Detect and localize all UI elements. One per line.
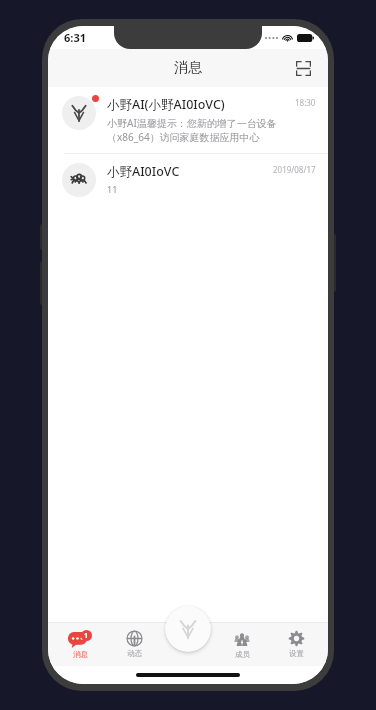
staticText: 消息 (73, 650, 88, 659)
staticText: 11 (107, 183, 118, 195)
button[interactable]: 动态 (112, 628, 156, 660)
staticText: 消息 (174, 59, 202, 77)
staticText: 成员 (235, 650, 250, 659)
staticText: 小野AI温馨提示：您新的增了一台设备（x86_64）访问家庭数据应用中心 (107, 116, 289, 144)
staticText: 小野AI0IoVC (107, 163, 180, 180)
staticText: 1 (84, 631, 89, 641)
button[interactable]: 1 (58, 628, 102, 661)
button[interactable]: 设置 (274, 628, 318, 660)
button[interactable]: Home (165, 606, 211, 652)
staticText: 小野AI(小野AI0IoVC) (107, 96, 225, 113)
button[interactable]: 小野AI0IoVC (48, 154, 328, 206)
staticText: 18:30 (295, 97, 316, 108)
staticText: 6:31 (64, 30, 86, 45)
button[interactable]: Scan (288, 53, 318, 83)
button[interactable]: 小野AI(小野AI0IoVC) (48, 87, 328, 153)
staticText: 设置 (289, 649, 304, 658)
staticText: 动态 (127, 649, 142, 658)
staticText: 2019/08/17 (273, 164, 316, 175)
button[interactable]: 成员 (220, 628, 264, 661)
